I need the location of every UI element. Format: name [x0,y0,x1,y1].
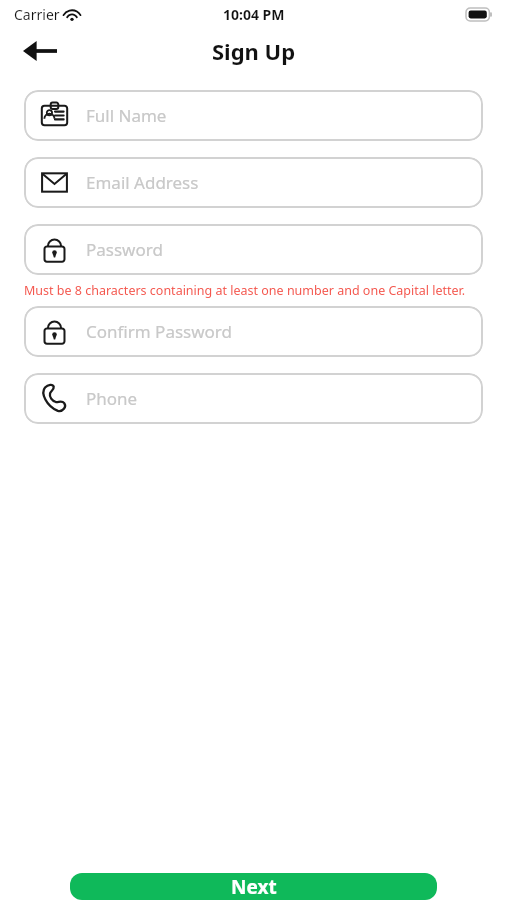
staticText: 10:04 PM [223,5,285,24]
staticText: Next [231,874,277,900]
staticText: Email Address [86,171,199,194]
staticText: Sign Up [212,36,296,66]
button[interactable]: Next [70,873,437,900]
button[interactable]: Phone [24,373,483,424]
button[interactable]: Back [20,31,60,71]
button[interactable]: Password [24,224,483,275]
button[interactable]: Email Address [24,157,483,208]
staticText: Confirm Password [86,320,232,343]
staticText: Password [86,238,163,261]
staticText: Must be 8 characters containing at least… [24,282,466,299]
staticText: Carrier [14,5,60,24]
staticText: Full Name [86,104,167,127]
button[interactable]: Confirm Password [24,306,483,357]
button[interactable]: Full Name [24,90,483,141]
staticText: Phone [86,387,138,410]
